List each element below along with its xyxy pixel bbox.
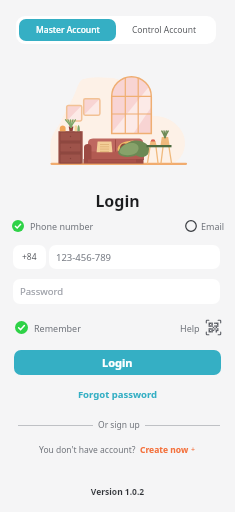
staticText: Password xyxy=(20,285,63,298)
staticText: 123-456-789 xyxy=(56,251,112,264)
staticText: Email xyxy=(201,220,225,232)
button[interactable]: +84 xyxy=(13,245,46,269)
staticText: Or sign up xyxy=(98,419,140,431)
button[interactable]: Phone number xyxy=(12,220,94,232)
staticText: + xyxy=(191,445,196,455)
staticText: You don't have account? xyxy=(39,444,136,456)
button[interactable]: Remember xyxy=(15,321,81,334)
staticText: Login xyxy=(102,355,133,370)
other: Scan QR code xyxy=(206,320,221,335)
staticText: Phone number xyxy=(30,220,94,232)
button[interactable]: Email xyxy=(185,220,225,232)
button[interactable]: Password xyxy=(13,279,220,304)
button[interactable]: Create now xyxy=(140,444,196,456)
staticText: Create now xyxy=(140,444,189,456)
staticText: Master Account xyxy=(36,24,100,36)
button[interactable]: 123-456-789 xyxy=(49,245,220,269)
staticText: Control Account xyxy=(132,24,197,36)
button[interactable]: Forgot password xyxy=(0,388,235,401)
button[interactable]: Master Account xyxy=(19,19,116,41)
button[interactable]: Login xyxy=(14,350,221,375)
button[interactable]: Control Account xyxy=(116,19,213,41)
staticText: +84 xyxy=(22,251,37,263)
staticText: Version 1.0.2 xyxy=(0,486,235,498)
button[interactable]: Help xyxy=(180,320,221,335)
staticText: Login xyxy=(0,190,235,212)
staticText: Remember xyxy=(34,322,81,334)
staticText: Help xyxy=(180,322,200,334)
